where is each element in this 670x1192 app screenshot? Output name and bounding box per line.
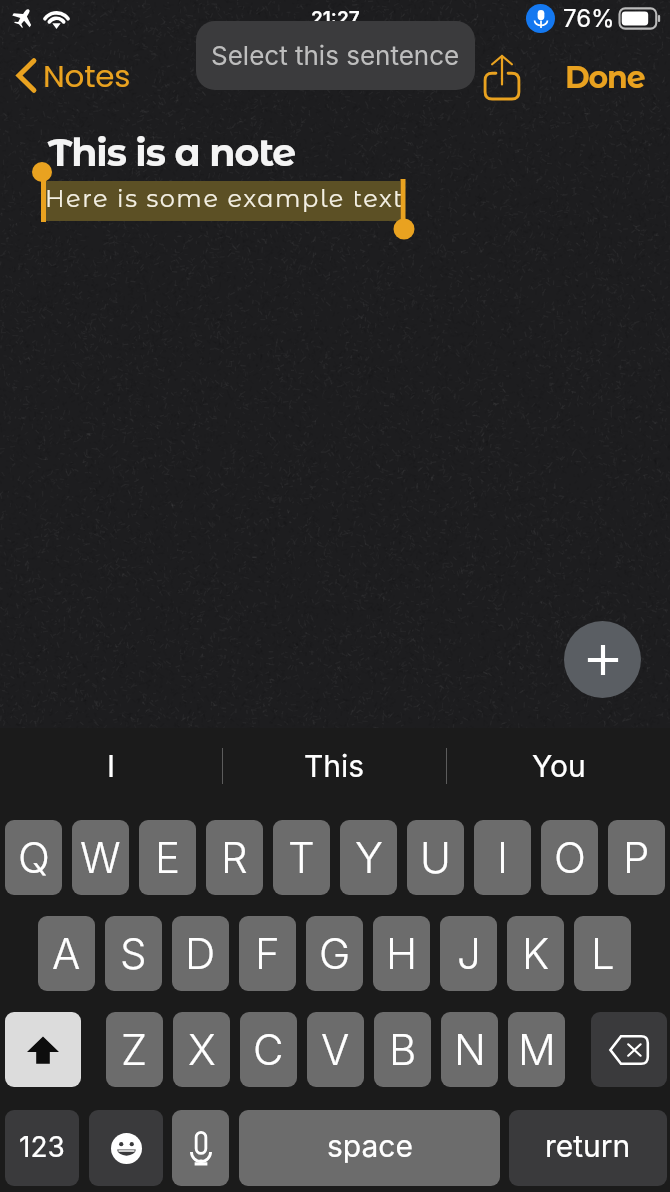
- staticText: Y: [355, 832, 383, 883]
- button[interactable]: T: [273, 820, 330, 895]
- staticText: O: [554, 832, 586, 883]
- button[interactable]: Dictation: [172, 1110, 229, 1186]
- button[interactable]: F: [239, 916, 296, 991]
- button[interactable]: Emoji: [89, 1110, 163, 1186]
- staticText: M: [518, 1024, 556, 1075]
- button[interactable]: Notes: [15, 54, 131, 97]
- staticText: Z: [121, 1024, 148, 1075]
- staticText: 76%: [563, 4, 615, 33]
- staticText: N: [454, 1024, 486, 1075]
- staticText: return: [545, 1128, 631, 1164]
- staticText: Here is some example text: [45, 184, 405, 213]
- button[interactable]: R: [206, 820, 263, 895]
- button[interactable]: U: [407, 820, 464, 895]
- button[interactable]: J: [440, 916, 497, 991]
- staticText: X: [188, 1024, 216, 1075]
- button[interactable]: Done: [565, 59, 645, 96]
- button[interactable]: Shift: [5, 1012, 81, 1087]
- staticText: K: [522, 928, 550, 979]
- button[interactable]: Backspace: [591, 1012, 667, 1087]
- staticText: T: [288, 832, 315, 883]
- button[interactable]: W: [72, 820, 129, 895]
- button[interactable]: P: [608, 820, 665, 895]
- button[interactable]: C: [240, 1012, 297, 1087]
- button[interactable]: G: [306, 916, 363, 991]
- staticText: B: [389, 1024, 417, 1075]
- button[interactable]: E: [139, 820, 196, 895]
- button[interactable]: D: [172, 916, 229, 991]
- button[interactable]: O: [541, 820, 598, 895]
- staticText: V: [321, 1024, 350, 1075]
- staticText: R: [221, 832, 248, 883]
- button[interactable]: S: [105, 916, 162, 991]
- staticText: 123: [19, 1130, 65, 1164]
- staticText: W: [80, 832, 121, 883]
- staticText: Notes: [43, 54, 131, 97]
- button[interactable]: Add: [564, 621, 641, 698]
- button[interactable]: L: [574, 916, 631, 991]
- button[interactable]: I: [0, 728, 222, 804]
- staticText: This is a note: [48, 129, 296, 175]
- staticText: This: [304, 748, 365, 784]
- staticText: F: [255, 928, 280, 979]
- staticText: A: [52, 928, 81, 979]
- staticText: I: [107, 748, 116, 784]
- button[interactable]: X: [173, 1012, 230, 1087]
- button[interactable]: Z: [106, 1012, 163, 1087]
- button[interactable]: Y: [340, 820, 397, 895]
- staticText: J: [457, 928, 481, 979]
- button[interactable]: Q: [5, 820, 62, 895]
- staticText: Done: [565, 59, 645, 96]
- staticText: Select this sentence: [211, 40, 460, 71]
- button[interactable]: V: [307, 1012, 364, 1087]
- staticText: U: [420, 832, 451, 883]
- staticText: H: [386, 928, 418, 979]
- button[interactable]: This: [223, 728, 446, 804]
- button[interactable]: Select this sentence: [196, 21, 475, 90]
- button[interactable]: I: [474, 820, 531, 895]
- staticText: space: [327, 1128, 413, 1164]
- button[interactable]: return: [509, 1110, 667, 1186]
- button[interactable]: N: [441, 1012, 498, 1087]
- staticText: Q: [18, 832, 50, 883]
- button[interactable]: space: [239, 1110, 500, 1186]
- button[interactable]: K: [507, 916, 564, 991]
- button[interactable]: M: [508, 1012, 565, 1087]
- button[interactable]: B: [374, 1012, 431, 1087]
- staticText: D: [185, 928, 216, 979]
- button[interactable]: You: [447, 728, 670, 804]
- staticText: C: [253, 1024, 284, 1075]
- staticText: I: [497, 832, 509, 883]
- button[interactable]: H: [373, 916, 430, 991]
- staticText: L: [591, 928, 615, 979]
- staticText: You: [532, 748, 586, 784]
- button[interactable]: 123: [5, 1110, 79, 1186]
- button[interactable]: A: [38, 916, 95, 991]
- staticText: E: [155, 832, 180, 883]
- staticText: S: [120, 928, 147, 979]
- staticText: G: [319, 928, 351, 979]
- button[interactable]: Share: [476, 49, 528, 105]
- staticText: 21:27: [311, 7, 360, 30]
- staticText: P: [623, 832, 650, 883]
